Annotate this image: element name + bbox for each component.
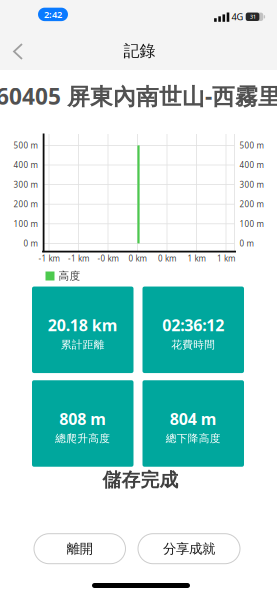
staticText: 400 m [13, 160, 37, 170]
staticText: 4G [231, 10, 243, 23]
staticText: 花費時間 [171, 338, 215, 351]
staticText: 200 m [239, 199, 263, 209]
staticText: 記錄 [123, 41, 155, 61]
staticText: -0 km [97, 253, 118, 264]
staticText: 300 m [239, 179, 263, 190]
staticText: 總爬升高度 [55, 432, 110, 445]
staticText: 500 m [13, 140, 37, 151]
staticText: 100 m [13, 218, 37, 229]
staticText: 60405 屏東內南世山-西霧里 [0, 81, 277, 111]
staticText: -1 km [38, 253, 59, 264]
staticText: 808 m [59, 408, 106, 429]
staticText: 1 km [187, 253, 205, 264]
staticText: 300 m [13, 179, 37, 190]
staticText: 儲存完成 [102, 468, 178, 491]
staticText: 2:42 [44, 8, 62, 21]
staticText: 離開 [67, 540, 93, 557]
staticText: 100 m [239, 218, 263, 229]
staticText: 500 m [239, 140, 263, 151]
staticText: 02:36:12 [162, 314, 224, 336]
staticText: 200 m [13, 199, 37, 209]
staticText: 累計距離 [61, 338, 105, 351]
staticText: 0 km [128, 253, 146, 264]
staticText: 400 m [239, 160, 263, 170]
staticText: 31 [250, 13, 256, 20]
staticText: 804 m [170, 408, 217, 429]
staticText: 分享成就 [163, 540, 215, 557]
button[interactable]: 分享成就 [138, 534, 240, 564]
staticText: -1 km [68, 253, 89, 264]
staticText: 0 m [239, 238, 253, 249]
staticText: 20.18 km [48, 314, 118, 336]
staticText: 1 km [217, 253, 235, 264]
staticText: 0 km [158, 253, 176, 264]
staticText: 總下降高度 [166, 432, 221, 445]
staticText: 0 m [23, 238, 37, 249]
button[interactable]: 離開 [34, 534, 125, 564]
staticText: 高度 [58, 269, 80, 282]
button[interactable] [0, 0, 277, 600]
